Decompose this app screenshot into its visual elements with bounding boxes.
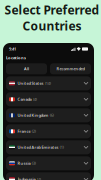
staticText: Countries: [22, 18, 81, 34]
button[interactable]: Indonesia: [6, 172, 91, 180]
button[interactable]: Canada: [6, 92, 91, 106]
staticText: United Arab Emirates: [17, 145, 58, 150]
button[interactable]: France: [6, 124, 91, 138]
staticText: (3): [32, 161, 36, 166]
staticText: Indonesia: [17, 177, 35, 180]
staticText: (6): [50, 113, 54, 118]
staticText: United Kingdom: [17, 113, 48, 118]
staticText: (1): [60, 145, 64, 150]
staticText: Canada: [17, 97, 31, 102]
staticText: All: [24, 66, 29, 71]
button[interactable]: Russia: [6, 156, 91, 170]
staticText: United States: [17, 81, 43, 86]
staticText: Select Preferred: [4, 2, 99, 18]
staticText: Locations: [6, 55, 26, 60]
button[interactable]: United States: [6, 76, 91, 90]
staticText: (2): [32, 129, 36, 134]
staticText: Russia: [17, 161, 30, 166]
staticText: Recommended: [56, 66, 84, 71]
button[interactable]: Recommended: [50, 63, 91, 74]
button[interactable]: All: [6, 63, 47, 74]
staticText: 9:41: [9, 46, 16, 52]
button[interactable]: United Arab Emirates: [6, 140, 91, 154]
staticText: France: [17, 129, 30, 134]
staticText: (2): [37, 177, 41, 180]
staticText: (4): [33, 97, 37, 102]
staticText: (14): [45, 81, 51, 86]
button[interactable]: United Kingdom: [6, 108, 91, 122]
